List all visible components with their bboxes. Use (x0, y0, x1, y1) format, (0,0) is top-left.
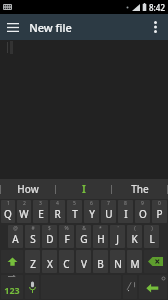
staticText: I (124, 207, 128, 221)
staticText: % (64, 225, 69, 232)
button[interactable]: 7 (101, 200, 116, 223)
staticText: @ (13, 225, 18, 232)
staticText: N (114, 257, 122, 271)
button[interactable]: @ (8, 225, 23, 248)
staticText: D (46, 232, 54, 246)
staticText: C (63, 257, 70, 271)
staticText: New file (29, 20, 72, 35)
button[interactable]: Shift (1, 250, 23, 273)
staticText: J (116, 232, 119, 246)
staticText: 123 (4, 284, 20, 296)
staticText: 9 (141, 200, 144, 207)
staticText: $ (48, 225, 51, 232)
staticText: 1 (7, 200, 10, 207)
staticText: # (31, 225, 35, 232)
button[interactable]: The (112, 179, 167, 199)
button[interactable]: Backspace (144, 250, 167, 273)
button[interactable]: C (59, 250, 74, 273)
staticText: How (17, 182, 39, 196)
button[interactable]: 1 (1, 200, 15, 223)
button[interactable]: 2 (17, 200, 31, 223)
staticText: Z (30, 257, 36, 271)
button[interactable]: Open navigation drawer (0, 14, 26, 40)
staticText: E (38, 207, 44, 221)
staticText: F (64, 232, 70, 246)
staticText: ( (134, 225, 136, 232)
button[interactable]: ( (127, 225, 142, 248)
button[interactable]: 6 (84, 200, 99, 223)
button[interactable]: How (1, 179, 55, 199)
button[interactable]: 0 (152, 200, 167, 223)
staticText: P (156, 207, 163, 221)
staticText: ' (117, 225, 119, 232)
button[interactable]: % (59, 225, 74, 248)
button[interactable]: 3 (33, 200, 48, 223)
staticText: S (30, 232, 36, 246)
staticText: 7 (107, 200, 110, 207)
staticText: 8 (124, 200, 127, 207)
staticText: H (97, 232, 105, 246)
staticText: I (82, 182, 86, 196)
staticText: B (97, 257, 104, 271)
staticText: 8:42 (149, 2, 165, 13)
button[interactable]: More options (142, 14, 168, 40)
button[interactable]: 4 (50, 200, 65, 223)
staticText: Q (4, 207, 12, 221)
button[interactable]: N (110, 250, 125, 273)
button[interactable]: & (76, 225, 91, 248)
staticText: 6 (90, 200, 93, 207)
staticText: * (99, 225, 102, 232)
button[interactable]: 123 (1, 275, 23, 299)
staticText: L (149, 232, 155, 246)
button[interactable]: ' (110, 225, 125, 248)
staticText: 4 (56, 200, 59, 207)
button[interactable]: B (93, 250, 108, 273)
staticText: U (105, 207, 113, 221)
button[interactable]: $ (42, 225, 57, 248)
staticText: The (131, 182, 149, 196)
staticText: 3 (39, 200, 42, 207)
staticText: T (72, 207, 78, 221)
button[interactable]: M (127, 250, 142, 273)
staticText: O (139, 207, 147, 221)
staticText: A (12, 232, 19, 246)
staticText: K (131, 232, 138, 246)
button[interactable]: Z (25, 250, 40, 273)
button[interactable]: # (25, 225, 40, 248)
staticText: Y (89, 207, 95, 221)
staticText: 0 (158, 200, 161, 207)
staticText: 2 (23, 200, 26, 207)
staticText: V (81, 257, 87, 271)
staticText: W (19, 207, 29, 221)
staticText: 5 (73, 200, 76, 207)
button[interactable]: ) (144, 225, 159, 248)
button[interactable]: 8 (118, 200, 133, 223)
button[interactable]: X (42, 250, 57, 273)
button[interactable]: Voice input (25, 275, 39, 299)
staticText: R (54, 207, 61, 221)
button[interactable]: 9 (135, 200, 150, 223)
button[interactable]: V (76, 250, 91, 273)
button[interactable] (123, 275, 137, 299)
staticText: X (47, 257, 53, 271)
staticText: & (82, 225, 86, 232)
staticText: ) (151, 225, 153, 232)
button[interactable]: * (93, 225, 108, 248)
button[interactable]: I (56, 179, 111, 199)
button[interactable]: 5 (67, 200, 82, 223)
button[interactable]: Enter (139, 275, 167, 299)
staticText: M (130, 257, 140, 271)
staticText: G (80, 232, 88, 246)
